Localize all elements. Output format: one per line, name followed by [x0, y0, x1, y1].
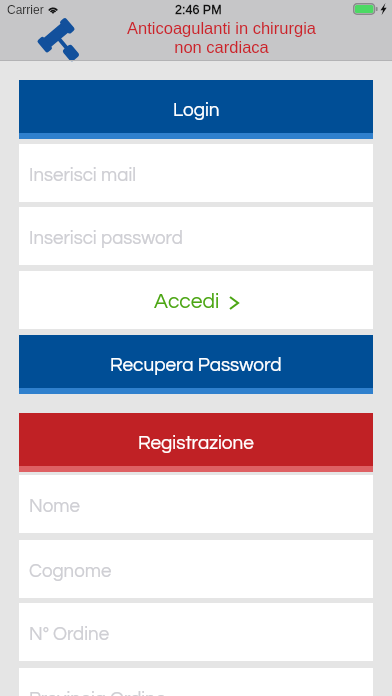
staticText: Cognome: [29, 562, 112, 581]
button[interactable]: Nome: [19, 475, 373, 533]
button[interactable]: N° Ordine: [19, 603, 373, 661]
button[interactable]: Login: [19, 80, 373, 139]
staticText: Carrier: [7, 3, 44, 16]
button[interactable]: Inserisci mail: [19, 144, 373, 202]
staticText: 2:46 PM: [175, 3, 222, 17]
other: Battery charging: [353, 3, 387, 15]
button[interactable]: Accedi: [19, 271, 373, 329]
staticText: Accedi: [154, 291, 220, 313]
button[interactable]: Provincia Ordine: [19, 668, 373, 696]
staticText: N° Ordine: [29, 625, 110, 644]
button[interactable]: Cognome: [19, 540, 373, 598]
other: Wi-Fi: [47, 4, 59, 14]
button[interactable]: Recupera Password: [19, 335, 373, 394]
staticText: Anticoagulanti in chirurgia non cardiaca: [127, 19, 316, 57]
button[interactable]: Inserisci password: [19, 207, 373, 265]
staticText: Provincia Ordine: [29, 690, 167, 696]
staticText: Inserisci password: [29, 229, 183, 248]
staticText: Recupera Password: [110, 355, 282, 375]
other: App logo: [31, 16, 85, 70]
staticText: Inserisci mail: [29, 166, 137, 185]
button[interactable]: App logo: [31, 16, 85, 70]
staticText: Login: [173, 100, 220, 120]
staticText: Registrazione: [138, 433, 254, 453]
button[interactable]: Registrazione: [19, 413, 373, 472]
staticText: Nome: [29, 497, 80, 516]
